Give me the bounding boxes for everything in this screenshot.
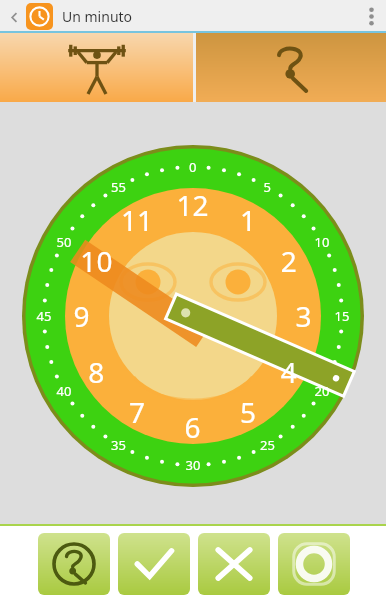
button[interactable]: Back — [2, 5, 26, 29]
button[interactable]: Help tab — [196, 33, 386, 102]
button[interactable]: Lifebuoy — [278, 533, 350, 595]
button[interactable]: Exercise tab — [0, 33, 193, 102]
button[interactable]: Help — [38, 533, 110, 595]
staticText: Un minuto — [62, 7, 133, 26]
button[interactable]: More options — [356, 0, 386, 33]
button[interactable]: Cancel — [198, 533, 270, 595]
button[interactable]: Confirm — [118, 533, 190, 595]
